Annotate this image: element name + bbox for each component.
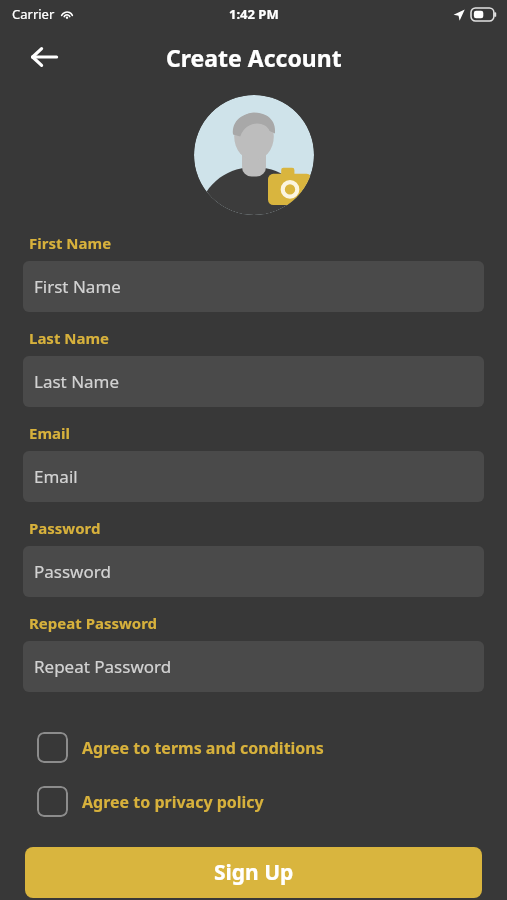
staticText: First Name xyxy=(34,275,121,298)
button[interactable]: Repeat Password xyxy=(23,641,484,692)
button[interactable]: Agree to privacy policy xyxy=(23,786,484,817)
staticText: Last Name xyxy=(29,328,110,348)
staticText: 1:42 PM xyxy=(229,5,279,23)
staticText: Password xyxy=(29,518,101,538)
staticText: Last Name xyxy=(34,370,120,393)
staticText: Repeat Password xyxy=(29,613,158,633)
button[interactable]: Last Name xyxy=(23,356,484,407)
button[interactable]: Change profile photo xyxy=(194,95,314,215)
staticText: Email xyxy=(34,465,78,488)
staticText: Carrier xyxy=(12,5,55,23)
staticText: Repeat Password xyxy=(34,655,172,678)
button[interactable]: First Name xyxy=(23,261,484,312)
staticText: Password xyxy=(34,560,111,583)
staticText: Agree to privacy policy xyxy=(82,791,264,813)
button[interactable]: Password xyxy=(23,546,484,597)
staticText: Agree to terms and conditions xyxy=(82,737,324,759)
button[interactable]: Agree to terms and conditions xyxy=(23,732,484,763)
button[interactable]: Email xyxy=(23,451,484,502)
staticText: First Name xyxy=(29,233,112,253)
button[interactable]: Sign Up xyxy=(25,847,482,898)
button[interactable]: Back xyxy=(20,33,68,81)
staticText: Email xyxy=(29,423,70,443)
staticText: Sign Up xyxy=(214,858,294,887)
staticText: Create Account xyxy=(166,42,342,73)
